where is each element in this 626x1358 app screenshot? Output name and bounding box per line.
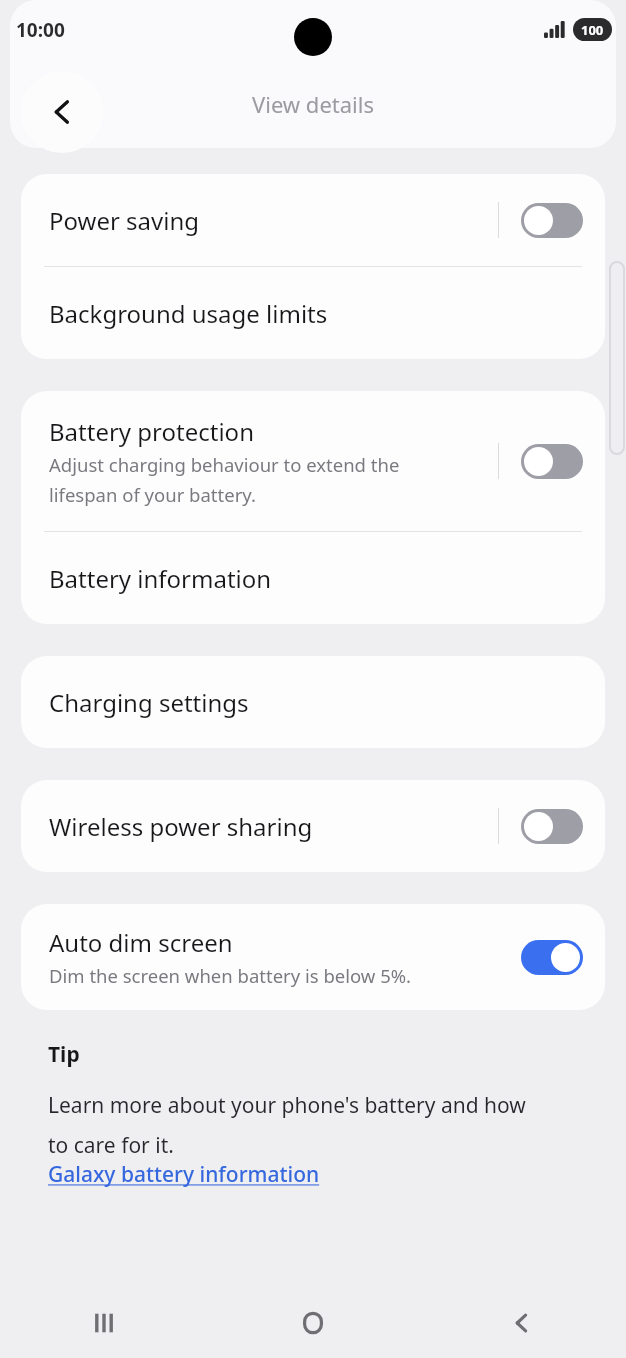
button[interactable]: Back xyxy=(417,1288,626,1358)
button[interactable]: Home xyxy=(208,1288,417,1358)
button[interactable]: View details xyxy=(10,62,616,148)
button[interactable] xyxy=(521,809,583,844)
staticText: Background usage limits xyxy=(49,297,328,330)
button[interactable] xyxy=(521,444,583,479)
staticText: Battery protection xyxy=(49,415,254,448)
button[interactable]: Back xyxy=(21,71,103,153)
button[interactable]: Battery information xyxy=(21,532,605,624)
staticText: Wireless power sharing xyxy=(49,810,313,843)
button[interactable]: Charging settings xyxy=(21,656,605,748)
button[interactable] xyxy=(521,940,583,975)
staticText: Battery information xyxy=(49,562,272,595)
button[interactable]: Recents xyxy=(0,1288,208,1358)
staticText: 100 xyxy=(581,21,604,39)
staticText: Auto dim screen xyxy=(49,926,233,959)
button[interactable]: Wireless power sharing xyxy=(21,780,605,872)
staticText: Tip xyxy=(48,1040,80,1069)
staticText: Learn more about your phone's battery an… xyxy=(48,1091,526,1160)
staticText: 10:00 xyxy=(16,17,65,43)
button[interactable]: Galaxy battery information xyxy=(48,1160,320,1189)
button[interactable]: Background usage limits xyxy=(21,267,605,359)
staticText: View details xyxy=(252,89,374,119)
button[interactable]: Battery protection xyxy=(21,391,605,531)
button[interactable]: Auto dim screen xyxy=(21,904,605,1010)
button[interactable]: Power saving xyxy=(21,174,605,266)
staticText: Dim the screen when battery is below 5%. xyxy=(49,963,412,988)
staticText: Adjust charging behaviour to extend the … xyxy=(49,452,400,507)
staticText: Charging settings xyxy=(49,686,249,719)
button[interactable] xyxy=(521,203,583,238)
staticText: Power saving xyxy=(49,204,200,237)
